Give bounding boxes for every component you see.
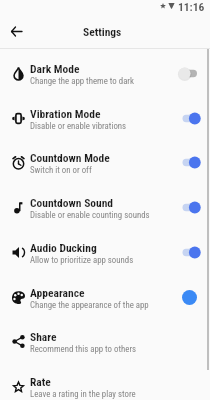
staticText: Appearance: [30, 286, 85, 299]
staticText: Rate: [30, 375, 51, 388]
button[interactable]: Countdown Sound: [0, 183, 210, 228]
button[interactable]: Back: [5, 20, 28, 43]
button[interactable]: Switch on: [177, 110, 203, 127]
button[interactable]: Rate: [0, 362, 210, 400]
staticText: Settings: [83, 25, 122, 38]
button[interactable]: Dark Mode: [0, 49, 210, 94]
staticText: Recommend this app to others: [30, 344, 137, 354]
staticText: Countdown Sound: [30, 196, 114, 209]
button[interactable]: Switch on: [177, 199, 203, 216]
button[interactable]: Switch on: [177, 154, 203, 171]
staticText: Change the app theme to dark: [30, 76, 135, 86]
staticText: Audio Ducking: [30, 241, 97, 254]
staticText: Disable or enable vibrations: [30, 121, 127, 131]
staticText: 11:16: [178, 0, 205, 12]
button[interactable]: Audio Ducking: [0, 228, 210, 273]
button[interactable]: Share: [0, 317, 210, 362]
staticText: Share: [30, 330, 57, 343]
button[interactable]: Accent colour: [182, 290, 197, 305]
staticText: Disable or enable counting sounds: [30, 210, 150, 220]
button[interactable]: Vibration Mode: [0, 94, 210, 139]
staticText: Allow to prioritize app sounds: [30, 255, 134, 265]
staticText: Vibration Mode: [30, 107, 101, 120]
button[interactable]: Switch on: [177, 244, 203, 261]
staticText: Switch it on or off: [30, 165, 92, 175]
staticText: Dark Mode: [30, 62, 80, 75]
staticText: Change the appearance of the app: [30, 300, 149, 310]
staticText: Leave a rating in the play store: [30, 389, 136, 399]
button[interactable]: Switch off: [177, 65, 203, 82]
button[interactable]: Countdown Mode: [0, 138, 210, 183]
staticText: Countdown Mode: [30, 151, 110, 164]
button[interactable]: Appearance: [0, 273, 210, 318]
